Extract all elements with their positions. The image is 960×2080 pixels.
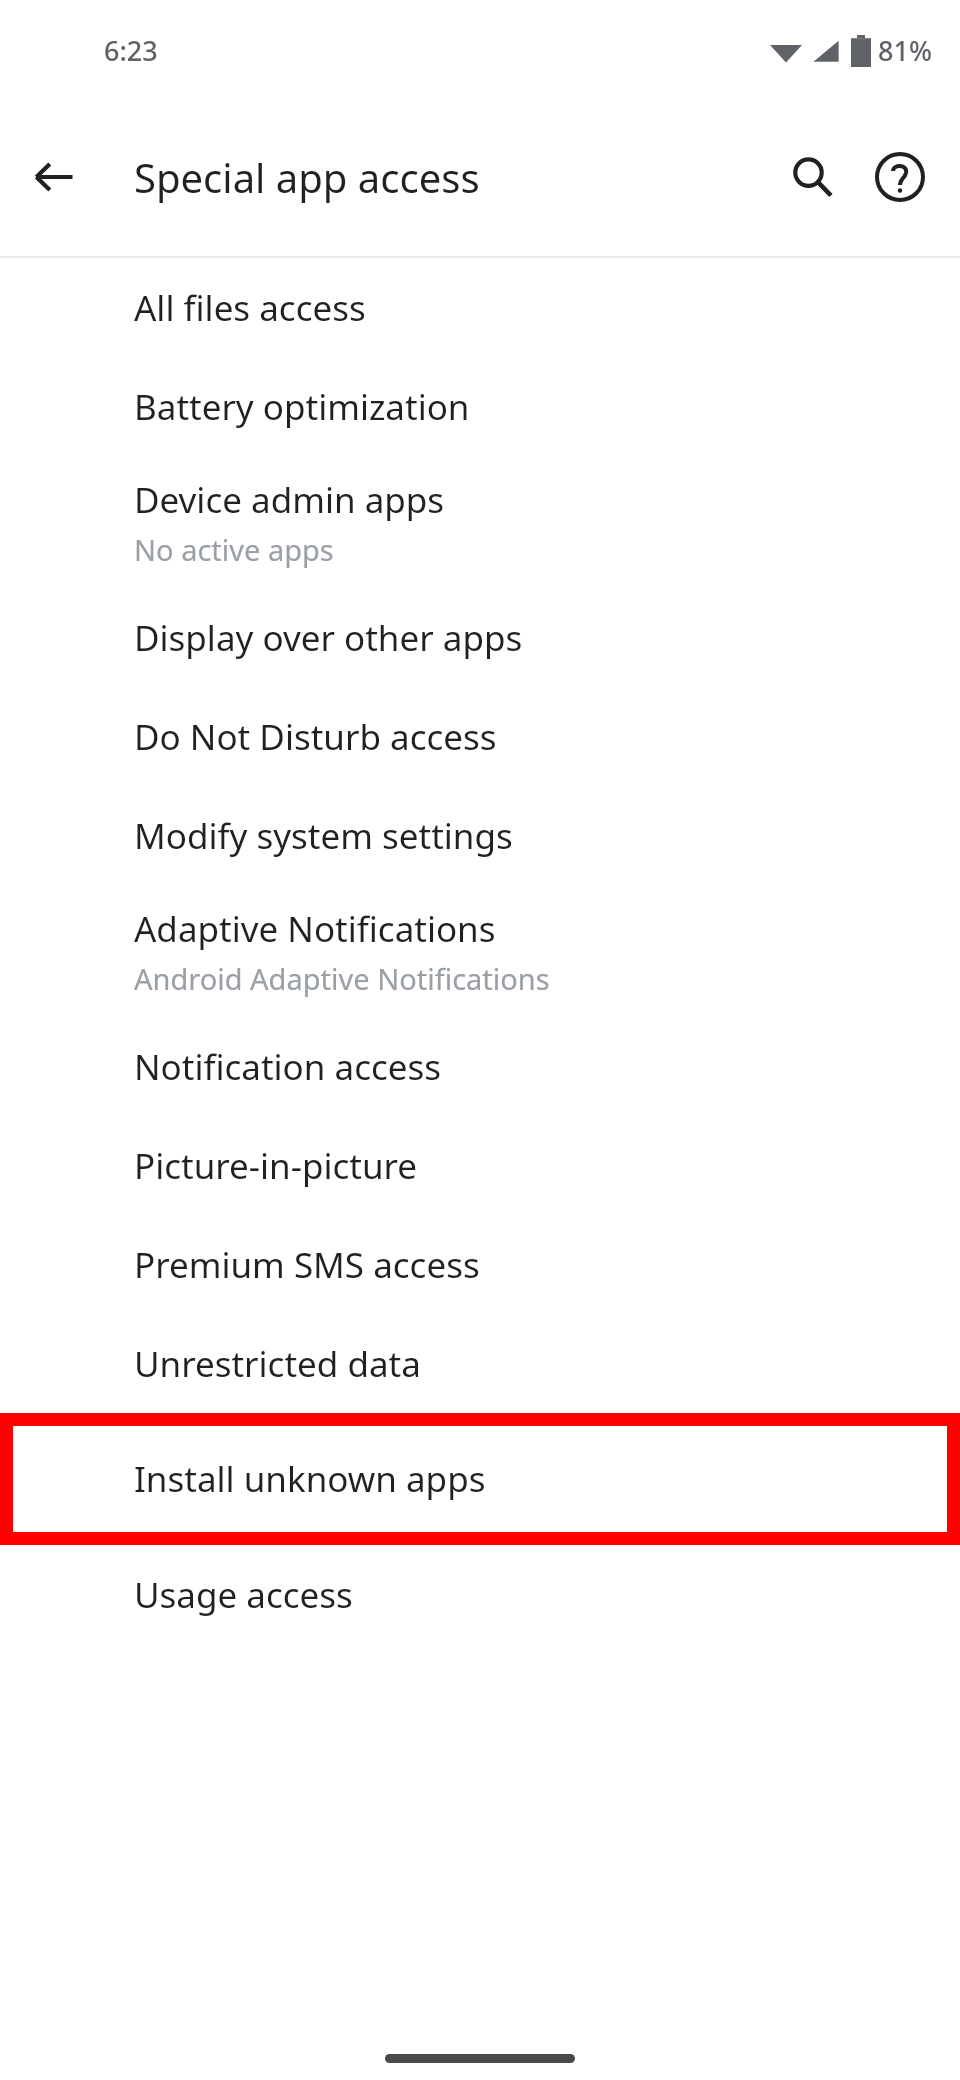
staticText: All files access	[134, 284, 366, 332]
staticText: Battery optimization	[134, 383, 470, 431]
button[interactable]: Premium SMS access	[0, 1215, 960, 1314]
staticText: No active apps	[134, 530, 334, 569]
staticText: 81%	[878, 32, 932, 69]
staticText: Premium SMS access	[134, 1241, 480, 1289]
staticText: Special app access	[134, 150, 480, 204]
staticText: Android Adaptive Notifications	[134, 959, 550, 998]
staticText: Device admin apps	[134, 476, 445, 524]
button[interactable]: Do Not Disturb access	[0, 687, 960, 786]
staticText: Notification access	[134, 1043, 442, 1091]
button[interactable]: All files access	[0, 258, 960, 357]
button[interactable]: Usage access	[0, 1545, 960, 1644]
staticText: Display over other apps	[134, 614, 523, 662]
button[interactable]: Install unknown apps	[0, 1413, 960, 1545]
button[interactable]: Notification access	[0, 1017, 960, 1116]
button[interactable]: Help	[852, 129, 948, 225]
staticText: Install unknown apps	[134, 1455, 486, 1503]
button[interactable]: Battery optimization	[0, 357, 960, 456]
button[interactable]: Adaptive Notifications	[0, 885, 960, 1017]
staticText: Usage access	[134, 1571, 353, 1619]
staticText: 6:23	[104, 32, 158, 69]
button[interactable]: Display over other apps	[0, 588, 960, 687]
button[interactable]: Search	[764, 129, 860, 225]
button[interactable]: Picture-in-picture	[0, 1116, 960, 1215]
button[interactable]: Modify system settings	[0, 786, 960, 885]
staticText: Unrestricted data	[134, 1340, 421, 1388]
button[interactable]: Device admin apps	[0, 456, 960, 588]
button[interactable]: Back	[14, 137, 94, 217]
staticText: Modify system settings	[134, 812, 513, 860]
staticText: Adaptive Notifications	[134, 905, 496, 953]
staticText: Do Not Disturb access	[134, 713, 497, 761]
button[interactable]: Unrestricted data	[0, 1314, 960, 1413]
staticText: Picture-in-picture	[134, 1142, 418, 1190]
